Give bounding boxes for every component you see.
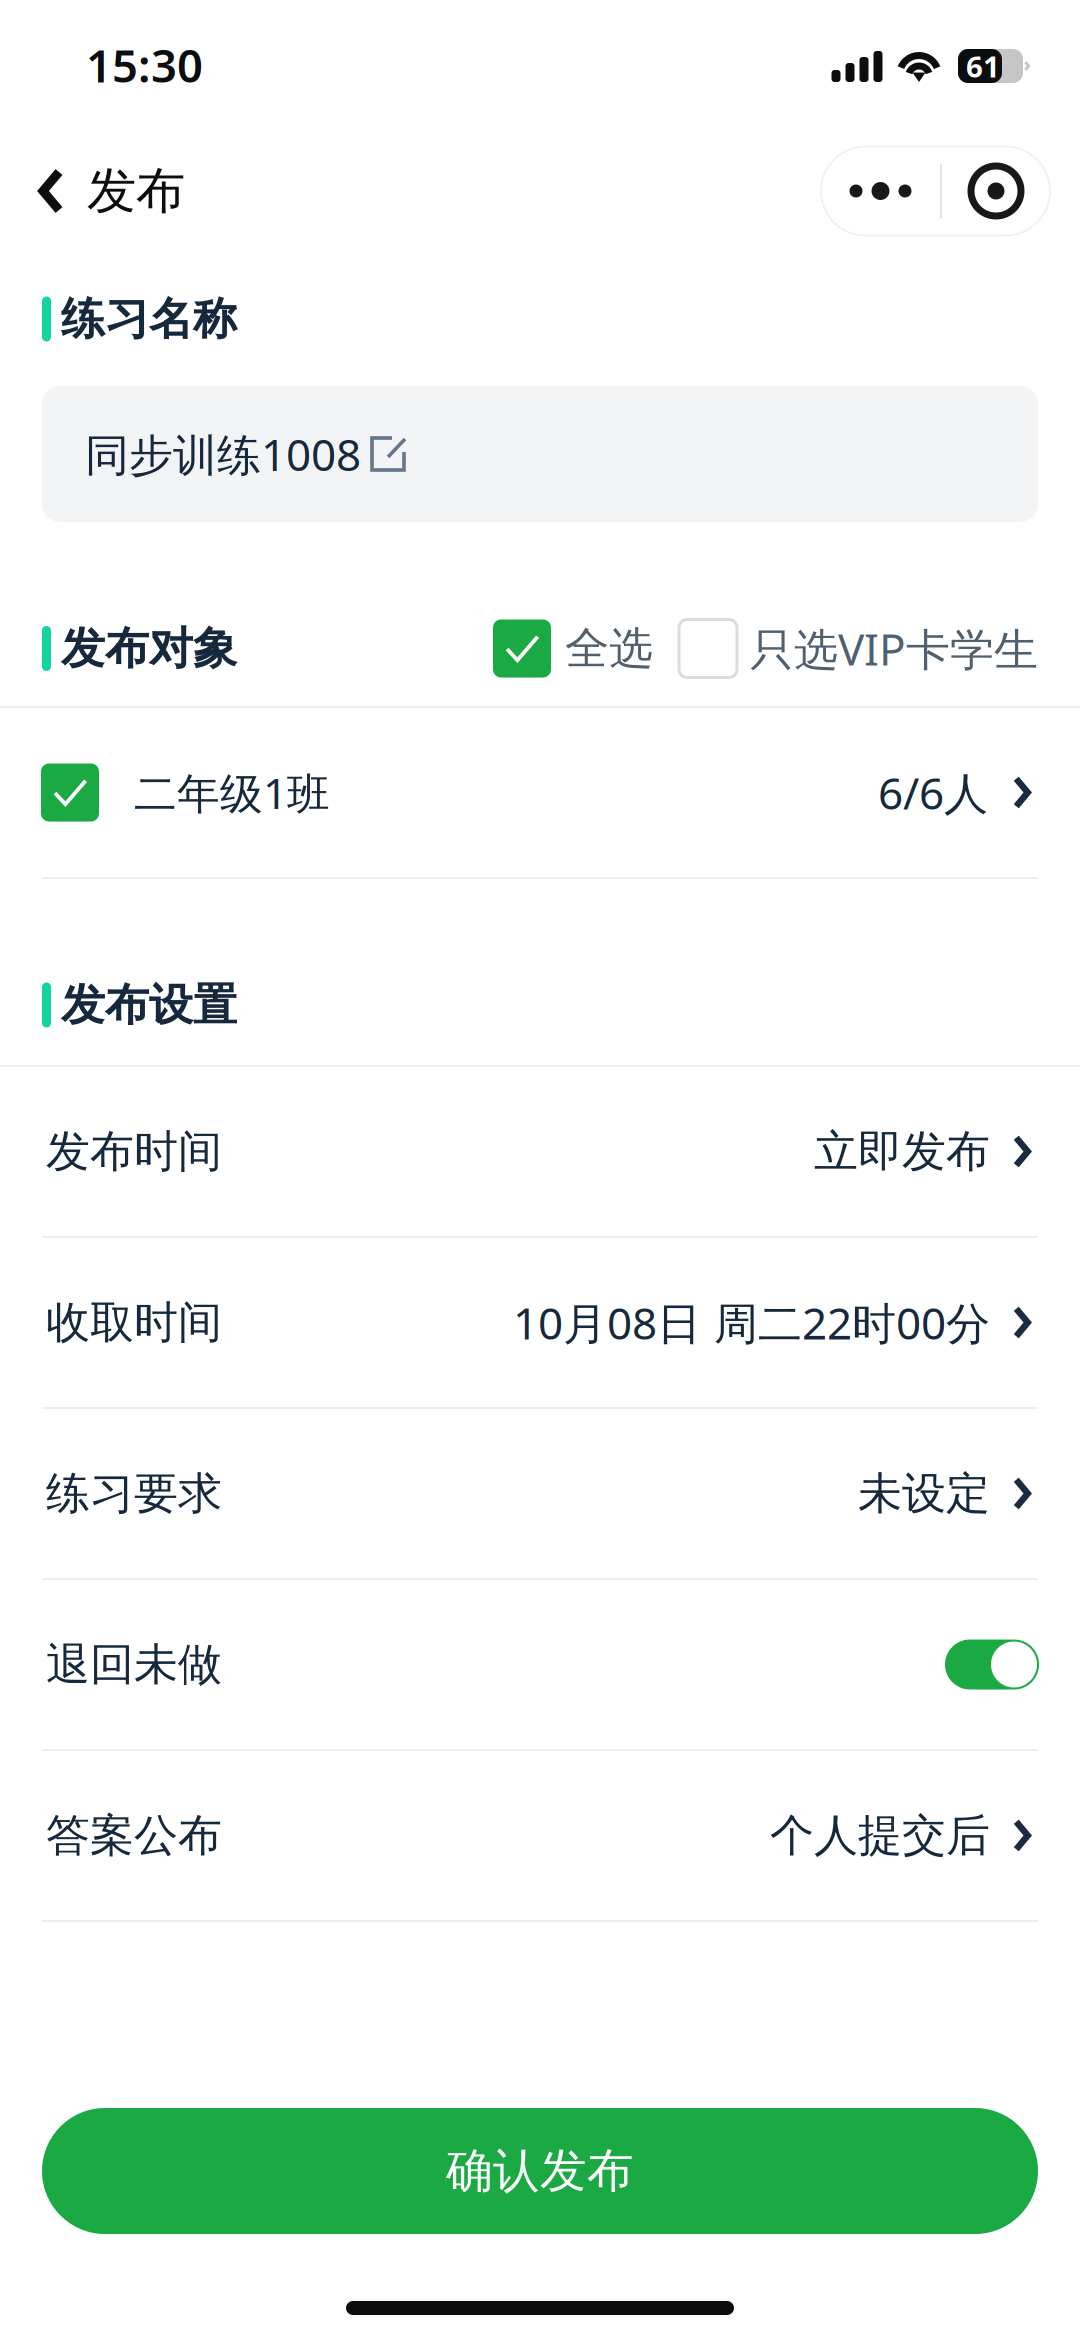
staticText: 收取时间: [46, 1295, 222, 1349]
staticText: 同步训练1008: [85, 425, 361, 483]
button[interactable]: 收取时间: [0, 1238, 1080, 1407]
staticText: 61: [966, 46, 1000, 85]
staticText: 练习名称: [61, 292, 237, 346]
staticText: 全选: [565, 621, 653, 675]
staticText: 发布对象: [61, 621, 237, 675]
button[interactable]: 确认发布: [42, 2108, 1038, 2234]
button[interactable]: 退回未做: [0, 1580, 1080, 1749]
staticText: 发布设置: [61, 978, 237, 1032]
staticText: 发布时间: [46, 1124, 222, 1178]
button[interactable]: Close mini program: [942, 146, 1050, 235]
staticText: 15:30: [86, 35, 203, 95]
staticText: 退回未做: [46, 1637, 222, 1691]
staticText: 只选VIP卡学生: [750, 619, 1038, 678]
button[interactable]: 二年级1班: [0, 708, 1080, 877]
button[interactable]: 只选VIP卡学生: [679, 619, 1038, 678]
staticText: 确认发布: [446, 2142, 634, 2200]
staticText: 10月08日 周二22时00分: [513, 1293, 990, 1352]
staticText: 立即发布: [814, 1124, 990, 1178]
staticText: 6/6人: [878, 763, 988, 822]
staticText: 练习要求: [46, 1466, 222, 1520]
staticText: 未设定: [858, 1466, 990, 1520]
button[interactable]: 答案公布: [0, 1751, 1080, 1920]
staticText: 发布: [87, 161, 185, 221]
button[interactable]: 练习要求: [0, 1409, 1080, 1578]
button[interactable]: 发布: [0, 130, 203, 252]
staticText: 答案公布: [46, 1808, 222, 1862]
button[interactable]: 发布时间: [0, 1067, 1080, 1236]
button[interactable]: More: [821, 146, 940, 235]
staticText: 个人提交后: [770, 1808, 990, 1862]
button[interactable]: 全选: [493, 619, 653, 677]
staticText: 二年级1班: [134, 764, 330, 821]
